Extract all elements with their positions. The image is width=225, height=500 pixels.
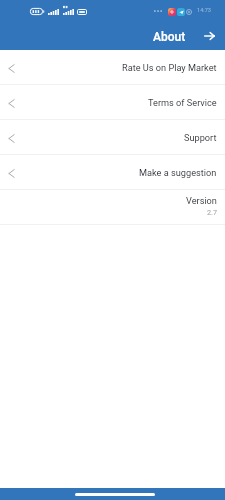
staticText: Make a suggestion — [139, 167, 217, 178]
button[interactable]: Terms of Service — [0, 85, 225, 120]
button[interactable]: Home — [75, 493, 155, 496]
button[interactable]: Rate Us on Play Market — [0, 50, 225, 85]
staticText: About — [153, 30, 186, 44]
staticText: 2.7 — [207, 208, 217, 216]
staticText: 14:73 — [197, 7, 211, 14]
staticText: Version — [186, 195, 217, 206]
button[interactable]: Support — [0, 120, 225, 155]
staticText: Terms of Service — [148, 97, 217, 108]
button[interactable]: Make a suggestion — [0, 155, 225, 190]
button[interactable]: Back — [200, 27, 218, 45]
staticText: Rate Us on Play Market — [122, 62, 217, 73]
staticText: Support — [184, 132, 217, 143]
